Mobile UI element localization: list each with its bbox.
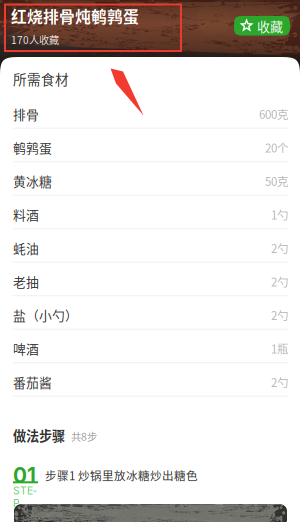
- button[interactable]: 排骨: [13, 95, 288, 129]
- staticText: 鹌鹑蛋: [13, 138, 52, 157]
- staticText: 2勺: [271, 273, 288, 290]
- staticText: 170人收藏: [11, 32, 59, 47]
- staticText: 蚝油: [13, 239, 39, 257]
- staticText: 1勺: [271, 206, 288, 223]
- staticText: 20个: [265, 139, 288, 156]
- button[interactable]: 番茄酱: [13, 363, 288, 397]
- staticText: 老抽: [13, 272, 39, 291]
- button[interactable]: 啤酒: [13, 330, 288, 363]
- staticText: 啤酒: [13, 339, 39, 358]
- staticText: 收藏: [257, 16, 283, 35]
- staticText: 番茄酱: [13, 373, 52, 391]
- staticText: 盐（小勺）: [13, 306, 78, 324]
- button[interactable]: 收藏: [234, 16, 290, 35]
- staticText: 料酒: [13, 205, 39, 224]
- button[interactable]: 蚝油: [13, 229, 288, 263]
- button[interactable]: 鹌鹑蛋: [13, 129, 288, 162]
- staticText: 01: [13, 463, 36, 488]
- staticText: 排骨: [13, 105, 39, 123]
- staticText: 做法步骤: [13, 426, 65, 445]
- staticText: 黄冰糖: [13, 172, 52, 190]
- staticText: 50克: [265, 173, 288, 189]
- staticText: 共8步: [71, 429, 97, 444]
- staticText: 1瓶: [271, 340, 288, 357]
- staticText: 2勺: [271, 307, 288, 323]
- button[interactable]: 黄冰糖: [13, 162, 288, 196]
- staticText: STEP: [13, 484, 37, 509]
- staticText: 2勺: [271, 374, 288, 390]
- staticText: 2勺: [271, 240, 288, 256]
- button[interactable]: 料酒: [13, 196, 288, 229]
- staticText: 600克: [259, 106, 288, 122]
- button[interactable]: 老抽: [13, 263, 288, 296]
- staticText: 所需食材: [13, 69, 69, 89]
- staticText: 步骤1 炒锅里放冰糖炒出糖色: [45, 467, 198, 484]
- button[interactable]: 盐（小勺）: [13, 296, 288, 330]
- staticText: 红烧排骨炖鹌鹑蛋: [11, 4, 139, 27]
